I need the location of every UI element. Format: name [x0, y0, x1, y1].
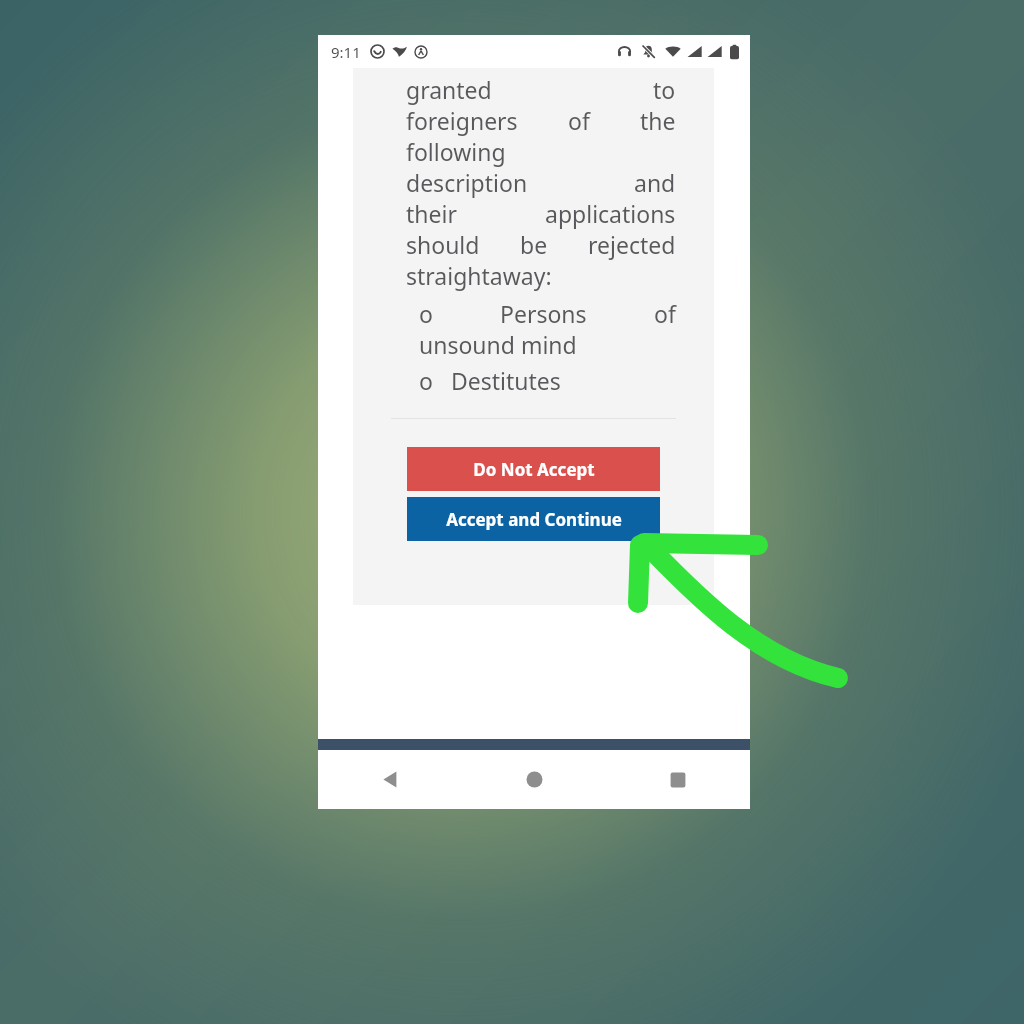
staticText: Destitutes: [451, 365, 561, 396]
staticText: of: [568, 105, 590, 136]
staticText: following: [406, 136, 506, 167]
staticText: to: [653, 74, 676, 105]
staticText: granted: [406, 74, 492, 105]
staticText: and: [634, 167, 676, 198]
button[interactable]: Home: [462, 750, 606, 809]
staticText: rejected: [588, 229, 676, 260]
staticText: Persons: [500, 298, 587, 329]
staticText: the: [640, 105, 676, 136]
staticText: of: [654, 298, 676, 329]
button[interactable]: Do Not Accept: [407, 447, 660, 491]
button[interactable]: Accept and Continue: [407, 497, 660, 541]
staticText: Do Not Accept: [473, 458, 595, 481]
staticText: their: [406, 198, 457, 229]
staticText: applications: [545, 198, 676, 229]
staticText: o: [419, 365, 433, 396]
staticText: o: [419, 298, 433, 329]
staticText: 9:11: [331, 42, 361, 62]
staticText: should: [406, 229, 480, 260]
button[interactable]: Recent apps: [606, 750, 750, 809]
staticText: unsound mind: [419, 329, 577, 360]
staticText: foreigners: [406, 105, 518, 136]
staticText: be: [520, 229, 548, 260]
staticText: description: [406, 167, 528, 198]
button[interactable]: Back: [318, 750, 462, 809]
staticText: Accept and Continue: [446, 508, 622, 531]
staticText: straightaway:: [406, 260, 552, 291]
